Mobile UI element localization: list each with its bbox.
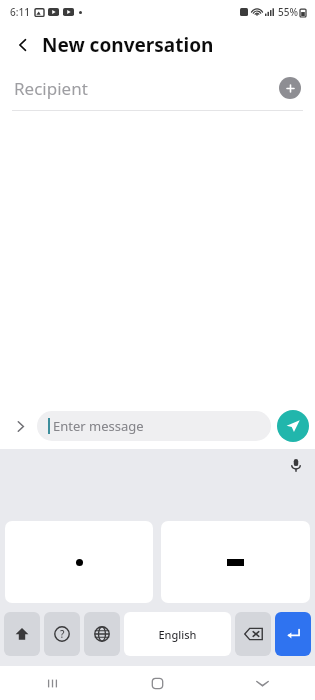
- button[interactable]: [5, 521, 153, 603]
- button[interactable]: Shift: [4, 612, 40, 656]
- staticText: 55%: [278, 5, 298, 19]
- button[interactable]: Voice input: [283, 452, 309, 478]
- button[interactable]: Enter: [275, 612, 311, 656]
- button[interactable]: Recipient: [0, 66, 315, 110]
- staticText: 6:11: [10, 5, 30, 19]
- staticText: New conversation: [42, 32, 214, 58]
- button[interactable]: Language: [84, 612, 120, 656]
- button[interactable]: Send: [277, 410, 309, 442]
- staticText: ?: [60, 627, 65, 641]
- button[interactable]: Help: [44, 612, 80, 656]
- button[interactable]: English: [124, 612, 231, 656]
- button[interactable]: Home: [105, 666, 210, 700]
- staticText: Recipient: [14, 77, 279, 100]
- button[interactable]: [161, 521, 310, 603]
- button[interactable]: Back: [6, 28, 40, 62]
- button[interactable]: Enter message: [37, 411, 271, 441]
- button[interactable]: Hide keyboard: [210, 666, 315, 700]
- button[interactable]: Expand options: [5, 411, 35, 441]
- button[interactable]: Backspace: [235, 612, 271, 656]
- staticText: English: [158, 627, 197, 642]
- button[interactable]: Add recipient: [279, 77, 301, 99]
- button[interactable]: Recents: [0, 666, 105, 700]
- staticText: Enter message: [53, 417, 144, 435]
